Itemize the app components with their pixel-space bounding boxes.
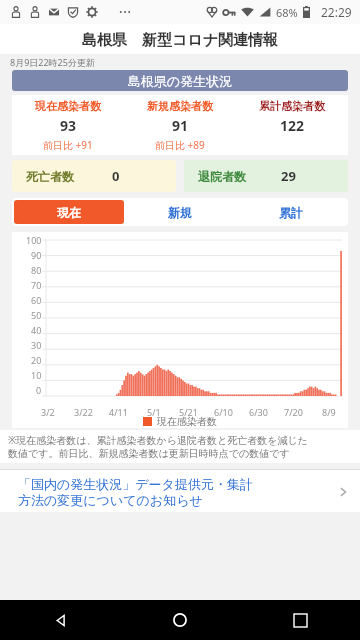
button[interactable]: Home — [120, 600, 240, 640]
staticText: 8/9 — [322, 406, 336, 418]
staticText: 50 — [31, 309, 42, 321]
staticText: 80 — [31, 264, 42, 276]
button[interactable]: 「国内の発生状況」データ提供元・集計 — [0, 470, 360, 512]
staticText: 島根県 新型コロナ関連情報 — [82, 29, 279, 49]
staticText: 累計 — [279, 205, 303, 220]
staticText: 新規 — [168, 205, 192, 220]
staticText: 93 — [60, 116, 77, 135]
staticText: 島根県の発生状況 — [128, 73, 233, 89]
staticText: 100 — [26, 234, 42, 246]
staticText: 122 — [280, 116, 305, 135]
staticText: 8月9日22時25分更新 — [10, 56, 95, 68]
button[interactable]: Back — [0, 600, 120, 640]
button[interactable]: 累計 — [235, 200, 346, 224]
staticText: 70 — [31, 279, 42, 291]
staticText: 方法の変更についてのお知らせ — [18, 492, 203, 508]
staticText: 0 — [112, 167, 120, 185]
staticText: 「国内の発生状況」データ提供元・集計 — [18, 476, 253, 492]
staticText: 数値です。前日比、新規感染者数は更新日時時点での数値です — [8, 447, 290, 460]
staticText: 20 — [31, 354, 42, 366]
staticText: 現在感染者数 — [35, 99, 101, 113]
staticText: 新規感染者数 — [147, 99, 213, 113]
staticText: 10 — [31, 369, 42, 381]
staticText: 91 — [172, 116, 189, 135]
staticText: 5/1 — [147, 406, 161, 418]
staticText: 7/20 — [284, 406, 303, 418]
staticText: 前日比 +89 — [155, 138, 205, 152]
staticText: 3/2 — [41, 406, 55, 418]
staticText: 現在感染者数 — [157, 415, 217, 428]
staticText: 4/11 — [109, 406, 128, 418]
staticText: 30 — [31, 339, 42, 351]
staticText: 29 — [281, 167, 296, 185]
staticText: 90 — [31, 249, 42, 261]
staticText: 退院者数 — [198, 169, 246, 184]
staticText: 現在 — [57, 205, 81, 220]
staticText: 累計感染者数 — [259, 99, 325, 113]
staticText: 3/22 — [74, 406, 93, 418]
staticText: 前日比 +91 — [43, 138, 93, 152]
staticText: 5/21 — [179, 406, 198, 418]
staticText: 22:29 — [321, 4, 352, 20]
staticText: 6/30 — [249, 406, 268, 418]
staticText: 40 — [31, 324, 42, 336]
staticText: ※現在感染者数は、累計感染者数から退院者数と死亡者数を減じた — [8, 433, 309, 447]
button[interactable]: Recent apps — [240, 600, 360, 640]
staticText: 死亡者数 — [26, 169, 74, 184]
staticText: 6/10 — [214, 406, 233, 418]
button[interactable]: 新規 — [124, 200, 235, 224]
staticText: 60 — [31, 294, 42, 306]
button[interactable]: 現在 — [14, 200, 124, 224]
staticText: 68% — [276, 5, 298, 20]
staticText: 0 — [36, 384, 42, 396]
